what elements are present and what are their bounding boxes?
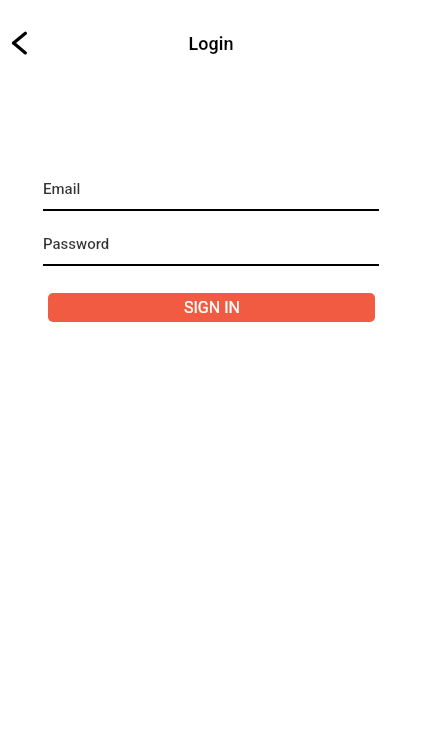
staticText: Email xyxy=(43,180,81,198)
button[interactable]: SIGN IN xyxy=(48,293,375,322)
staticText: Login xyxy=(0,33,422,54)
button[interactable]: Back xyxy=(0,19,40,67)
staticText: Password xyxy=(43,235,110,253)
staticText: SIGN IN xyxy=(184,298,240,317)
button[interactable]: Email xyxy=(43,180,379,211)
button[interactable]: Password xyxy=(43,235,379,266)
